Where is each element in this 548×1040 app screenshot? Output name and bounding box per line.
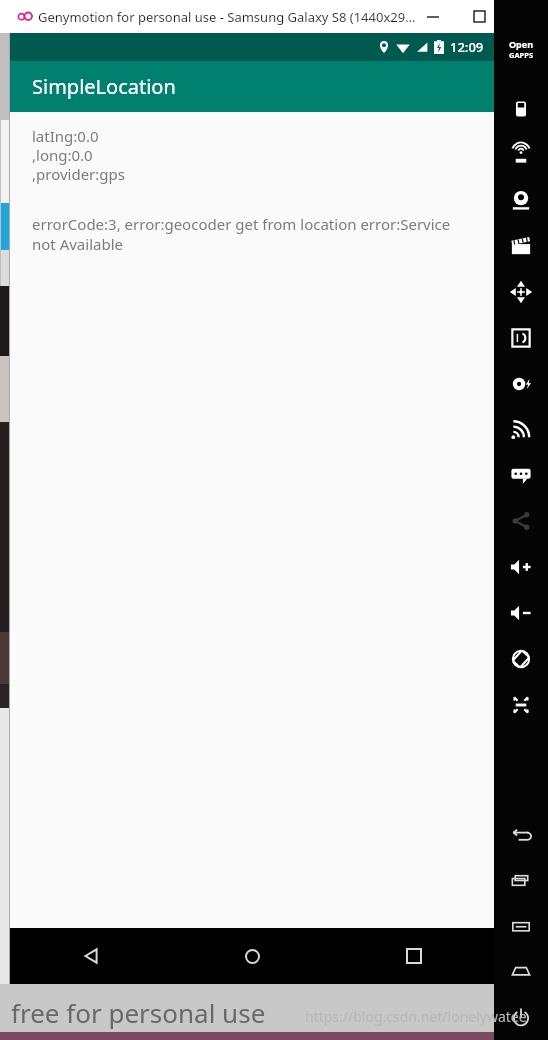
button[interactable]: 1:1 scale	[494, 688, 548, 722]
staticText: Open	[509, 38, 534, 50]
staticText: GAPPS	[509, 50, 534, 60]
button[interactable]: Camera	[494, 183, 548, 217]
staticText: latIng:0.0 ,long:0.0 ,provider:gps	[32, 126, 125, 185]
button[interactable]: Menu	[494, 910, 548, 944]
button[interactable]: Identifiers	[494, 321, 548, 355]
staticText: SimpleLocation	[32, 73, 176, 100]
button[interactable]: Minimize	[410, 0, 456, 33]
button[interactable]: Back	[494, 818, 548, 852]
button[interactable]: Share	[494, 504, 548, 538]
staticText: Genymotion for personal use - Samsung Ga…	[38, 8, 416, 26]
button[interactable]: Rotate	[494, 642, 548, 676]
button[interactable]: Power	[494, 1000, 548, 1034]
button[interactable]: Maximize	[456, 0, 502, 33]
button[interactable]: Home	[172, 928, 333, 984]
button[interactable]: Phone / SMS	[494, 458, 548, 492]
button[interactable]: Recents	[333, 928, 494, 984]
staticText: 12:09	[450, 38, 484, 56]
staticText: free for personal use	[11, 995, 266, 1030]
button[interactable]: Screen recorder	[494, 229, 548, 263]
button[interactable]: Volume up	[494, 550, 548, 584]
button[interactable]: Network	[494, 412, 548, 446]
button[interactable]: Disk IO / baseband	[494, 367, 548, 401]
button[interactable]: Battery	[494, 92, 548, 126]
button[interactable]: Back	[10, 928, 172, 984]
button[interactable]: Home	[494, 954, 548, 988]
button[interactable]: Accelerometer	[494, 275, 548, 309]
staticText: https://blog.csdn.net/lonelywatee	[305, 1007, 527, 1026]
button[interactable]: Open GAPPS	[494, 38, 548, 60]
button[interactable]: GPS	[494, 137, 548, 171]
button[interactable]: SimpleLocation	[10, 61, 494, 112]
staticText: errorCode:3, error:geocoder get from loc…	[32, 214, 476, 254]
button[interactable]: Volume down	[494, 596, 548, 630]
button[interactable]: Recents	[494, 864, 548, 898]
